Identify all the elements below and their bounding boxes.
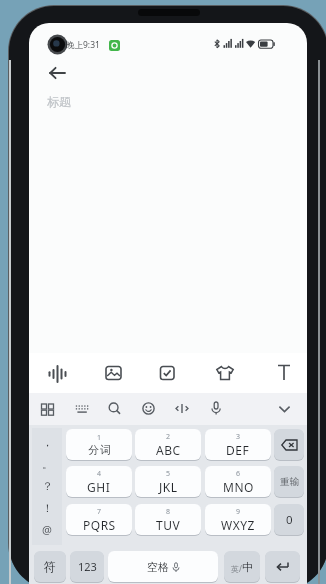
- button[interactable]: 。: [32, 453, 62, 474]
- button[interactable]: [105, 365, 122, 381]
- button[interactable]: ，: [32, 431, 62, 452]
- button[interactable]: [141, 401, 156, 416]
- button[interactable]: 空格: [108, 551, 218, 582]
- staticText: 2: [166, 432, 171, 442]
- button[interactable]: 2: [135, 429, 201, 460]
- staticText: 1: [97, 433, 102, 443]
- button[interactable]: 4: [66, 466, 132, 497]
- staticText: 3: [236, 432, 241, 442]
- button[interactable]: [107, 401, 122, 416]
- staticText: 英/: [231, 563, 242, 574]
- staticText: PQRS: [83, 517, 116, 533]
- button[interactable]: [159, 365, 176, 381]
- button[interactable]: @: [32, 519, 62, 540]
- button[interactable]: 6: [205, 466, 271, 497]
- button[interactable]: [209, 400, 223, 417]
- staticText: 符: [44, 559, 56, 574]
- staticText: 0: [286, 512, 293, 528]
- button[interactable]: 9: [205, 504, 271, 535]
- button[interactable]: ！: [32, 497, 62, 518]
- staticText: 123: [78, 559, 97, 574]
- staticText: 6: [236, 469, 241, 479]
- staticText: ABC: [156, 442, 181, 458]
- staticText: 空格: [147, 560, 169, 574]
- button[interactable]: 3: [205, 429, 271, 460]
- staticText: ！: [42, 501, 53, 515]
- staticText: 标题: [47, 94, 71, 109]
- button[interactable]: [174, 401, 190, 416]
- staticText: 5: [166, 469, 171, 479]
- button[interactable]: [265, 551, 300, 582]
- button[interactable]: [215, 364, 235, 382]
- staticText: 4: [97, 469, 102, 479]
- staticText: 分词: [88, 443, 111, 457]
- staticText: 晚上9:31: [66, 39, 100, 51]
- button[interactable]: [74, 402, 90, 416]
- button[interactable]: [40, 402, 55, 416]
- button[interactable]: 8: [135, 504, 201, 535]
- staticText: GHI: [87, 479, 111, 495]
- button[interactable]: 重输: [274, 466, 304, 497]
- staticText: @: [42, 522, 52, 537]
- staticText: 9: [236, 507, 241, 517]
- staticText: 。: [42, 457, 53, 471]
- button[interactable]: [48, 65, 68, 81]
- staticText: ？: [42, 479, 53, 493]
- button[interactable]: [274, 361, 294, 385]
- button[interactable]: 1: [66, 429, 132, 460]
- staticText: 中: [242, 560, 253, 574]
- button[interactable]: 7: [66, 504, 132, 535]
- button[interactable]: 符: [34, 551, 66, 582]
- staticText: 8: [166, 507, 171, 517]
- staticText: 7: [97, 507, 102, 517]
- staticText: DEF: [226, 442, 250, 458]
- staticText: ，: [42, 435, 53, 449]
- staticText: JKL: [159, 479, 178, 495]
- button[interactable]: 5: [135, 466, 201, 497]
- button[interactable]: 英/: [224, 551, 260, 582]
- staticText: TUV: [156, 517, 181, 533]
- button[interactable]: [274, 429, 304, 460]
- button[interactable]: ？: [32, 475, 62, 496]
- staticText: WXYZ: [221, 517, 255, 533]
- button[interactable]: [46, 362, 71, 386]
- button[interactable]: [276, 403, 293, 416]
- button[interactable]: 0: [274, 504, 304, 535]
- staticText: MNO: [223, 479, 254, 495]
- button[interactable]: 123: [70, 551, 104, 582]
- staticText: 重输: [280, 476, 299, 488]
